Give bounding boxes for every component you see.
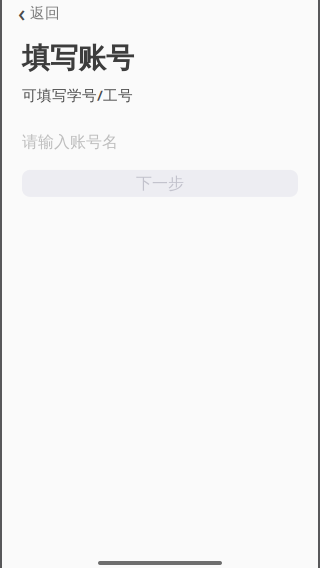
button[interactable]: ‹ bbox=[0, 3, 70, 23]
button[interactable]: 请输入账号名 bbox=[0, 131, 320, 153]
staticText: 请输入账号名 bbox=[22, 132, 118, 152]
staticText: 返回 bbox=[30, 4, 60, 22]
staticText: 填写账号 bbox=[22, 41, 134, 75]
staticText: 可填写学号/工号 bbox=[22, 85, 133, 105]
button[interactable]: 下一步 bbox=[0, 170, 320, 197]
staticText: 下一步 bbox=[136, 173, 184, 193]
staticText: ‹ bbox=[18, 0, 25, 28]
